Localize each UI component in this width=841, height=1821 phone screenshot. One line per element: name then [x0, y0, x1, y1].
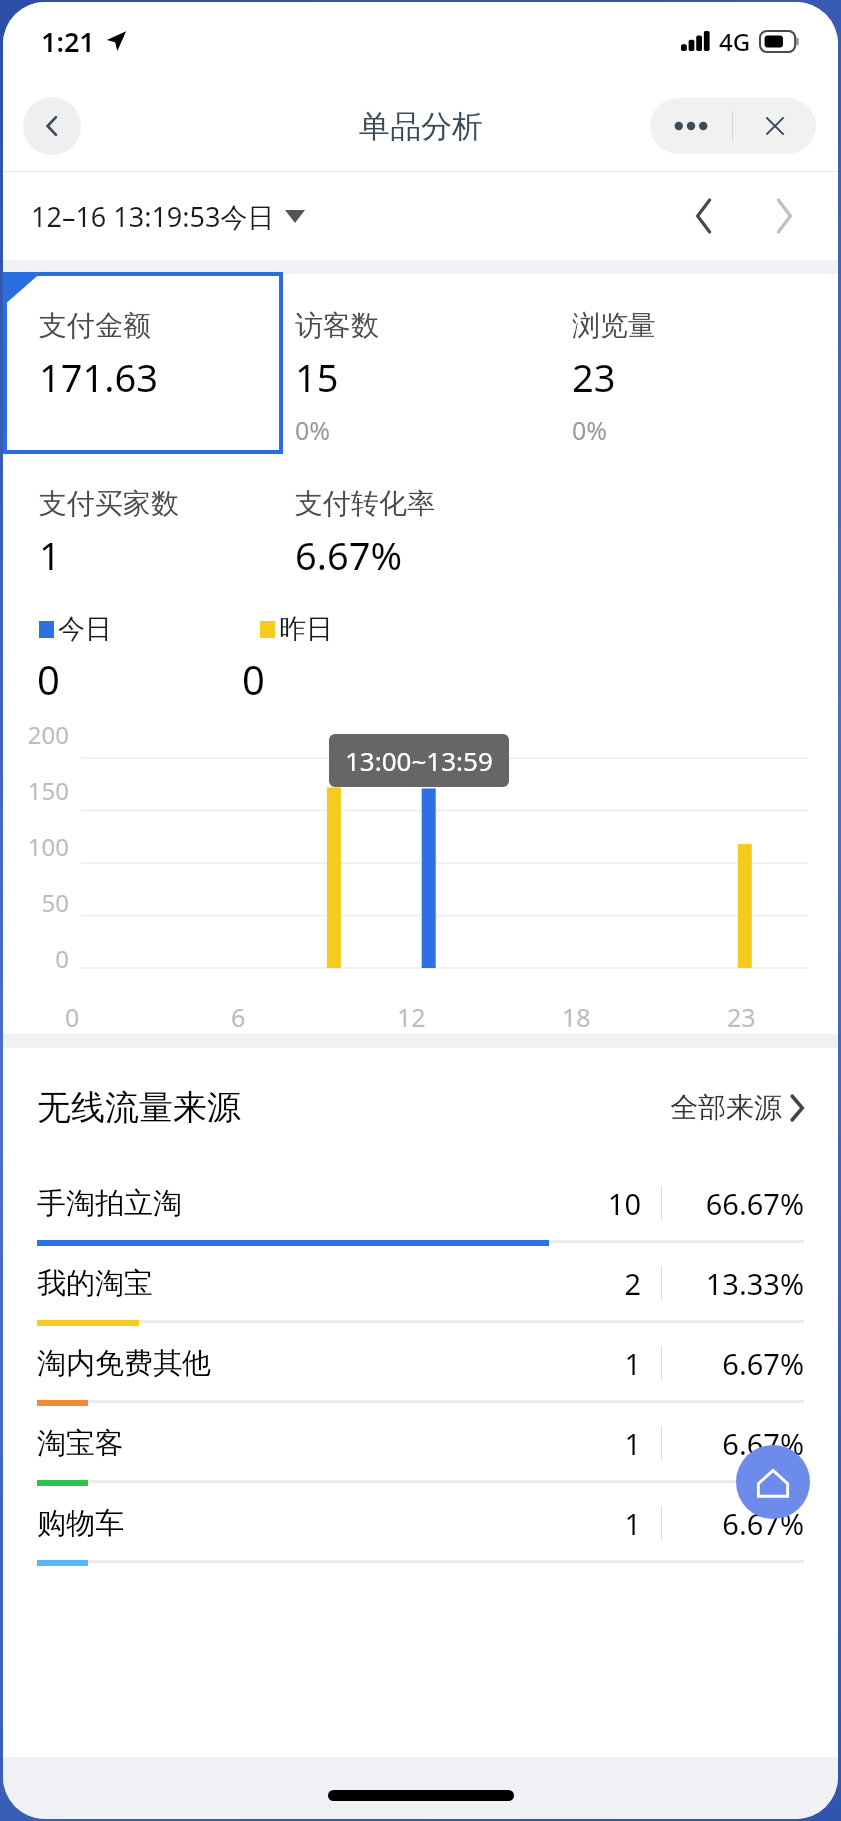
staticText: 18: [562, 1000, 727, 1034]
staticText: 100: [3, 830, 69, 863]
staticText: 13.33%: [682, 1264, 804, 1303]
staticText: 6.67%: [682, 1344, 804, 1383]
button[interactable]: Back: [23, 97, 81, 155]
staticText: 0: [242, 652, 265, 706]
button[interactable]: 全部来源: [670, 1090, 804, 1125]
button[interactable]: Next day: [758, 190, 810, 242]
button[interactable]: 浏览量: [560, 274, 838, 452]
staticText: 0%: [295, 413, 331, 447]
staticText: 66.67%: [682, 1184, 804, 1223]
staticText: 支付买家数: [39, 486, 179, 521]
staticText: 6.67%: [295, 529, 402, 581]
staticText: 访客数: [295, 308, 379, 343]
staticText: 0: [37, 652, 60, 706]
button[interactable]: 手淘拍立淘: [3, 1166, 838, 1246]
staticText: 23: [727, 1000, 826, 1034]
staticText: 支付金额: [39, 308, 151, 343]
staticText: 淘宝客: [37, 1425, 124, 1462]
staticText: 23: [572, 351, 616, 403]
staticText: 淘内免费其他: [37, 1345, 211, 1382]
staticText: 全部来源: [670, 1090, 782, 1125]
staticText: 6.67%: [682, 1504, 804, 1543]
staticText: 13:00~13:59: [345, 743, 493, 778]
staticText: 150: [3, 774, 69, 807]
button[interactable]: 淘内免费其他: [3, 1326, 838, 1406]
staticText: 购物车: [37, 1505, 124, 1542]
staticText: 15: [295, 351, 339, 403]
button[interactable]: 12–16 13:19:53今日: [31, 198, 305, 235]
button[interactable]: 访客数: [283, 274, 560, 452]
staticText: 0%: [572, 413, 608, 447]
staticText: 昨日: [279, 612, 333, 646]
staticText: 1: [597, 1504, 641, 1543]
button[interactable]: More options: [650, 98, 732, 154]
staticText: 6.67%: [682, 1424, 804, 1463]
staticText: 171.63: [39, 351, 158, 403]
staticText: 12–16 13:19:53今日: [31, 198, 275, 235]
staticText: 0: [65, 1000, 231, 1034]
staticText: 1: [597, 1424, 641, 1463]
staticText: 200: [3, 718, 69, 751]
staticText: 4G: [719, 25, 751, 58]
staticText: 我的淘宝: [37, 1265, 153, 1302]
staticText: 单品分析: [359, 107, 483, 146]
staticText: 0: [3, 942, 69, 975]
staticText: 10: [597, 1184, 641, 1223]
staticText: 浏览量: [572, 308, 656, 343]
staticText: 1: [39, 529, 61, 581]
button[interactable]: 支付买家数: [3, 452, 283, 602]
staticText: 无线流量来源: [37, 1086, 241, 1129]
staticText: 2: [597, 1264, 641, 1303]
staticText: 手淘拍立淘: [37, 1185, 182, 1222]
button[interactable]: Close: [733, 98, 816, 154]
button[interactable]: 支付转化率: [283, 452, 560, 602]
button[interactable]: Home: [736, 1445, 810, 1519]
button[interactable]: 支付金额: [3, 274, 283, 452]
staticText: 1:21: [41, 23, 95, 60]
staticText: 6: [231, 1000, 397, 1034]
staticText: 1: [597, 1344, 641, 1383]
staticText: 支付转化率: [295, 486, 435, 521]
staticText: 50: [3, 886, 69, 919]
staticText: 今日: [58, 612, 112, 646]
button[interactable]: 淘宝客: [3, 1406, 838, 1486]
button[interactable]: 我的淘宝: [3, 1246, 838, 1326]
button[interactable]: 购物车: [3, 1486, 838, 1566]
staticText: 12: [397, 1000, 562, 1034]
button[interactable]: Previous day: [678, 190, 730, 242]
